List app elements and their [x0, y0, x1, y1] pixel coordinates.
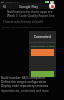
staticText: Choose which items to build — [3, 20, 43, 24]
staticText: Define the target configuration — [1, 80, 47, 84]
staticText: dependencies, credentials and more — [1, 89, 49, 93]
staticText: Current session statistics — [29, 41, 56, 44]
staticText: Notifications for these apps are — [7, 10, 53, 14]
button[interactable]: Account — [49, 3, 55, 9]
button[interactable] — [31, 71, 54, 77]
staticText: Google Play — [19, 4, 38, 9]
staticText: Device ready • 5 items — [31, 45, 55, 48]
staticText: Build number 4821 completed — [1, 76, 46, 80]
staticText: Review the latest build metrics and resu… — [2, 25, 52, 28]
staticText: Week 7: Code Quality Report line — [7, 14, 55, 18]
staticText: Deploy code repository revisions — [1, 84, 49, 88]
button[interactable]: Navigate up — [1, 3, 8, 9]
staticText: ▪▪ Google Play — [1, 0, 19, 3]
staticText: Connected — [34, 34, 51, 38]
